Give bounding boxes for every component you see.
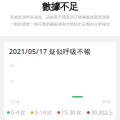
staticText: 有效監測時長過短，請檢查手環是否正確佩戴後重新測量 — [10, 15, 110, 20]
staticText: 2021/05/17 疑似呼吸不暢 — [9, 47, 91, 56]
staticText: 數據不足 — [42, 1, 78, 12]
staticText: 25 — [10, 79, 14, 84]
staticText: 一般的需要一個完整的睡眠週期才能給出完整的分析報告 — [10, 22, 110, 27]
staticText: 09:42 — [102, 99, 111, 104]
staticText: 0-4 次 — [11, 109, 25, 116]
staticText: 30 次以上 — [91, 109, 113, 116]
staticText: 15-30 次 — [61, 109, 81, 116]
staticText: 50 — [10, 63, 14, 68]
staticText: 02:54 — [10, 99, 19, 104]
staticText: 5-14 次 — [35, 109, 52, 116]
